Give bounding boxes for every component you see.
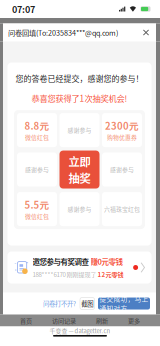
staticText: 六福珠宝红包 — [104, 205, 140, 213]
staticText: 微信红包 — [25, 212, 49, 220]
staticText: 更多 — [128, 316, 140, 325]
staticText: 您的答卷已经提交，感谢您的参与！ — [15, 72, 143, 84]
button[interactable]: 感谢参与 — [17, 153, 57, 187]
staticText: 5.5元 — [24, 198, 49, 211]
staticText: 抽奖 — [68, 170, 90, 186]
button[interactable]: 立即 — [59, 151, 99, 189]
staticText: 感谢参与 — [110, 165, 134, 174]
button[interactable]: 2300元 — [102, 113, 142, 147]
staticText: 感谢参与 — [25, 165, 49, 174]
staticText: 刷新 — [96, 316, 108, 325]
staticText: 感谢参与 — [67, 205, 91, 213]
staticText: 提交成功，马上通知对方 — [99, 294, 148, 313]
staticText: 购物优惠券 — [107, 133, 137, 141]
button[interactable]: 5.5元 — [17, 192, 57, 226]
staticText: 问卷回填(To:2035834***@qq.com) — [8, 27, 118, 38]
staticText: 首页 — [20, 316, 32, 325]
button[interactable]: 提交成功，马上通知对方 — [98, 297, 150, 309]
staticText: 8.8元 — [24, 119, 49, 132]
staticText: 188****6170 刚刚提现了 — [32, 270, 97, 279]
staticText: 截图 — [81, 299, 93, 308]
staticText: 访问记录 — [52, 316, 76, 325]
button[interactable]: 关闭 — [140, 26, 152, 38]
staticText: 07:07 — [12, 2, 35, 15]
button[interactable]: 邀您参与有奖调查 — [7, 251, 151, 283]
button[interactable]: 六福珠宝红包 — [102, 192, 142, 226]
staticText: 赚0元零钱 — [90, 256, 122, 267]
staticText: 感谢参与 — [67, 126, 91, 134]
staticText: 问卷打不开? — [43, 299, 76, 308]
staticText: 邀您参与有奖调查 — [32, 256, 90, 267]
button[interactable]: 问卷打不开? — [43, 299, 76, 308]
staticText: 立即 — [68, 153, 90, 169]
staticText: 2300元 — [105, 119, 139, 132]
button[interactable]: 感谢参与 — [102, 153, 142, 187]
button[interactable]: 感谢参与 — [59, 192, 99, 226]
staticText: 微信红包 — [25, 133, 49, 141]
staticText: 12元零钱 — [97, 270, 123, 279]
button[interactable]: 感谢参与 — [59, 113, 99, 147]
staticText: 恭喜您获得了1次抽奖机会! — [31, 92, 127, 104]
button[interactable]: 截图 — [80, 297, 94, 309]
staticText: 千变查 — datagetter.cn — [49, 326, 110, 335]
button[interactable]: 8.8元 — [17, 113, 57, 147]
